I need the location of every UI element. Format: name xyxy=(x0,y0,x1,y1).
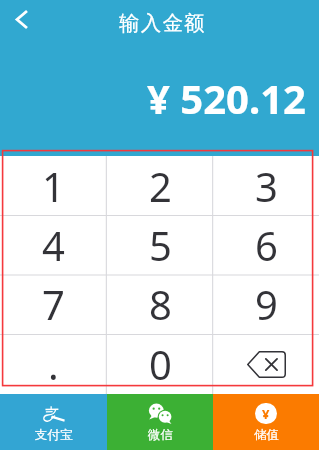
staticText: 支付宝 xyxy=(35,427,73,443)
button[interactable]: 4 xyxy=(0,215,107,274)
button[interactable]: ¥ xyxy=(213,394,319,450)
staticText: 2 xyxy=(149,159,172,213)
button[interactable]: Backspace xyxy=(213,334,319,394)
button[interactable]: 0 xyxy=(107,334,213,394)
staticText: ¥ xyxy=(262,405,270,423)
button[interactable]: 7 xyxy=(0,274,107,334)
staticText: 1 xyxy=(42,159,65,213)
button[interactable]: Back xyxy=(8,5,36,33)
staticText: 4 xyxy=(42,218,65,272)
staticText: 9 xyxy=(255,277,278,331)
button[interactable]: 6 xyxy=(213,215,319,274)
staticText: ¥ 520.12 xyxy=(147,71,306,125)
staticText: 0 xyxy=(149,337,172,391)
button[interactable]: 微信 xyxy=(107,394,213,450)
staticText: 输入金额 xyxy=(119,10,206,36)
button[interactable]: 支付宝 xyxy=(0,394,107,450)
button[interactable]: 9 xyxy=(213,274,319,334)
staticText: . xyxy=(48,337,59,391)
staticText: 6 xyxy=(255,218,278,272)
button[interactable]: 8 xyxy=(107,274,213,334)
staticText: 3 xyxy=(255,159,278,213)
button[interactable]: . xyxy=(0,334,107,394)
staticText: 7 xyxy=(42,277,65,331)
staticText: 储值 xyxy=(254,427,279,443)
staticText: 微信 xyxy=(148,427,173,443)
button[interactable]: 5 xyxy=(107,215,213,274)
button[interactable]: 1 xyxy=(0,156,107,215)
button[interactable]: 3 xyxy=(213,156,319,215)
staticText: 5 xyxy=(149,218,172,272)
button[interactable]: 2 xyxy=(107,156,213,215)
staticText: 8 xyxy=(149,277,172,331)
